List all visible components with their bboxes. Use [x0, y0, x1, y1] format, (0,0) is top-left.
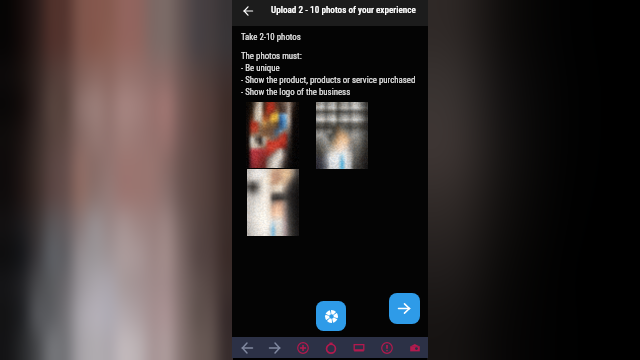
- staticText: Take 2-10 photos: [241, 32, 301, 42]
- button[interactable]: Screen cast: [345, 337, 373, 358]
- button[interactable]: Wallet: [401, 337, 428, 358]
- button[interactable]: Photo 3: [247, 169, 298, 235]
- button[interactable]: Back: [233, 337, 261, 358]
- button[interactable]: Next: [389, 293, 420, 324]
- staticText: The photos must: - Be unique - Show the …: [241, 51, 416, 97]
- button[interactable]: Record: [317, 337, 345, 358]
- button[interactable]: Take photo: [316, 301, 346, 331]
- button[interactable]: Photo 1: [246, 102, 298, 167]
- button[interactable]: Photo 2: [316, 102, 367, 168]
- button[interactable]: Alert: [373, 337, 401, 358]
- button[interactable]: Navigate up: [235, 0, 260, 22]
- button[interactable]: Forward: [261, 337, 289, 358]
- staticText: Upload 2 - 10 photos of your experience: [271, 5, 416, 16]
- button[interactable]: Add: [289, 337, 317, 358]
